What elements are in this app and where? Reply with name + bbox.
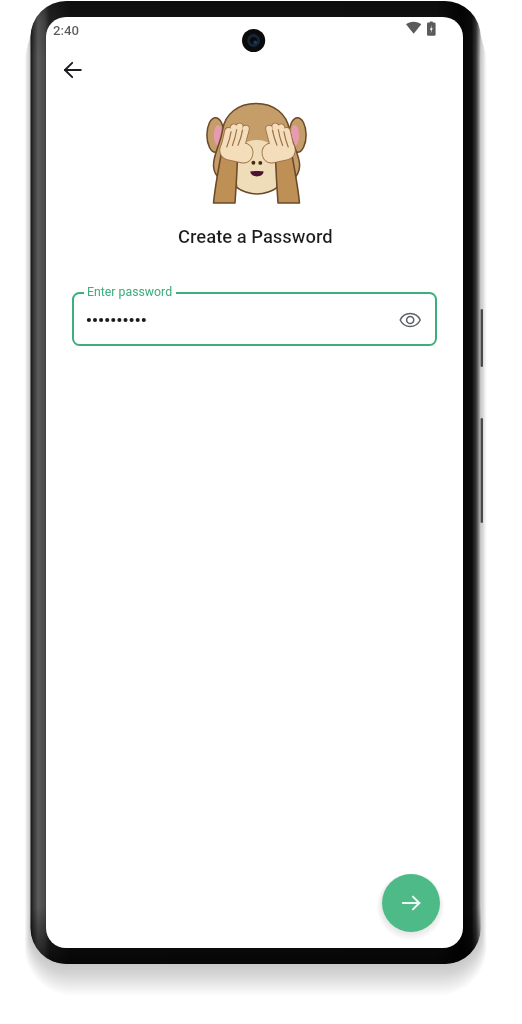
button[interactable]: Enter password [72,292,437,346]
button[interactable]: Back [55,52,91,88]
staticText: Create a Password [178,226,333,248]
staticText: 2:40 [53,23,79,38]
button[interactable]: Continue [382,874,440,932]
button[interactable]: Show password [392,298,434,340]
staticText: Enter password [87,285,173,299]
